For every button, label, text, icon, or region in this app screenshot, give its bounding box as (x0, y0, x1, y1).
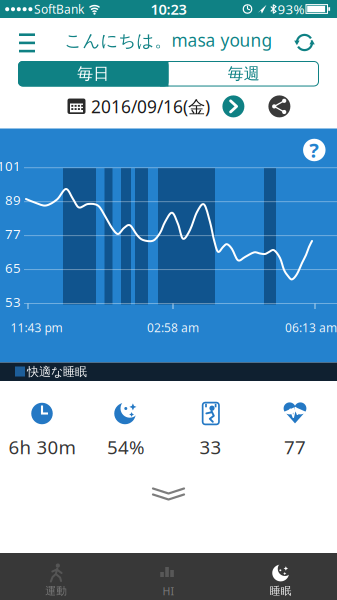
button[interactable]: Expand (145, 483, 191, 505)
staticText: 10:23 (150, 0, 186, 19)
staticText: 毎週 (228, 64, 260, 84)
button[interactable]: 毎週 (169, 61, 319, 86)
staticText: 6h 30m (8, 435, 75, 459)
button[interactable]: 毎日 (18, 61, 168, 86)
button[interactable]: Select date (64, 94, 210, 118)
staticText: SoftBank (34, 1, 84, 17)
staticText: ? (309, 137, 319, 163)
staticText: 33 (199, 435, 221, 459)
staticText: 快適な睡眠 (27, 364, 87, 379)
staticText: HI (163, 584, 175, 598)
staticText: こんにちは。masa young (64, 28, 272, 51)
button[interactable]: Share (268, 95, 290, 117)
staticText: 2016/09/16(金) (91, 95, 210, 118)
staticText: 101 (0, 157, 21, 175)
button[interactable]: 運動 (0, 553, 112, 600)
button[interactable]: Menu (15, 31, 39, 57)
staticText: 06:13 am (285, 319, 337, 335)
staticText: 54% (107, 435, 145, 459)
button[interactable]: 睡眠 (225, 553, 337, 600)
staticText: 65 (5, 259, 21, 277)
staticText: 11:43 pm (10, 319, 62, 335)
staticText: 毎日 (77, 64, 109, 84)
staticText: 77 (284, 435, 306, 459)
button[interactable]: Refresh (288, 26, 320, 58)
staticText: 89 (5, 191, 21, 209)
button[interactable]: Help (303, 139, 326, 161)
staticText: 睡眠 (270, 584, 292, 597)
staticText: 53 (5, 293, 21, 311)
staticText: 77 (5, 225, 21, 243)
button[interactable]: Next day (222, 95, 244, 117)
staticText: 運動 (45, 584, 67, 597)
staticText: 02:58 am (147, 319, 199, 335)
button[interactable]: HI (112, 553, 225, 600)
staticText: 93% (277, 0, 304, 18)
